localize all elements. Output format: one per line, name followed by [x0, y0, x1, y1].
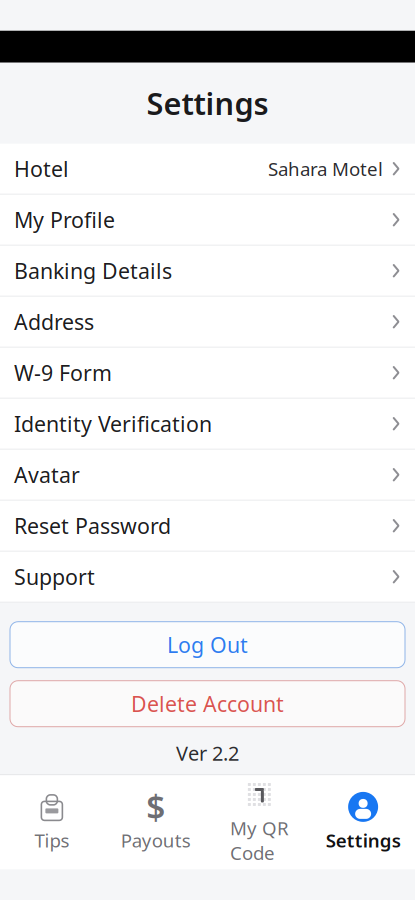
- staticText: Delete Account: [131, 690, 284, 718]
- button[interactable]: Support: [0, 552, 415, 603]
- staticText: Hotel: [14, 155, 69, 183]
- button[interactable]: Hotel: [0, 144, 415, 195]
- button[interactable]: Banking Details: [0, 246, 415, 297]
- staticText: Ver 2.2: [176, 740, 239, 766]
- staticText: Banking Details: [14, 257, 172, 285]
- button[interactable]: Address: [0, 297, 415, 348]
- staticText: Avatar: [14, 461, 80, 489]
- staticText: Identity Verification: [14, 410, 212, 438]
- staticText: Sahara Motel: [268, 156, 383, 181]
- button[interactable]: Tips: [0, 792, 104, 853]
- staticText: Payouts: [121, 828, 191, 853]
- button[interactable]: Settings: [311, 792, 415, 853]
- staticText: Tips: [34, 828, 69, 853]
- button[interactable]: $: [104, 792, 208, 853]
- button[interactable]: My Profile: [0, 195, 415, 246]
- button[interactable]: Log Out: [0, 622, 415, 668]
- button[interactable]: Delete Account: [0, 681, 415, 727]
- button[interactable]: Reset Password: [0, 501, 415, 552]
- staticText: $: [146, 785, 165, 829]
- staticText: Log Out: [167, 631, 248, 659]
- button[interactable]: W-9 Form: [0, 348, 415, 399]
- staticText: W-9 Form: [14, 359, 112, 387]
- button[interactable]: My QR Code: [207, 779, 311, 865]
- staticText: My QR Code: [230, 815, 289, 865]
- button[interactable]: Identity Verification: [0, 399, 415, 450]
- staticText: Reset Password: [14, 512, 171, 540]
- staticText: Address: [14, 308, 94, 336]
- staticText: My Profile: [14, 206, 115, 234]
- staticText: Settings: [326, 828, 401, 853]
- staticText: Settings: [146, 83, 268, 124]
- staticText: Support: [14, 563, 95, 591]
- button[interactable]: Avatar: [0, 450, 415, 501]
